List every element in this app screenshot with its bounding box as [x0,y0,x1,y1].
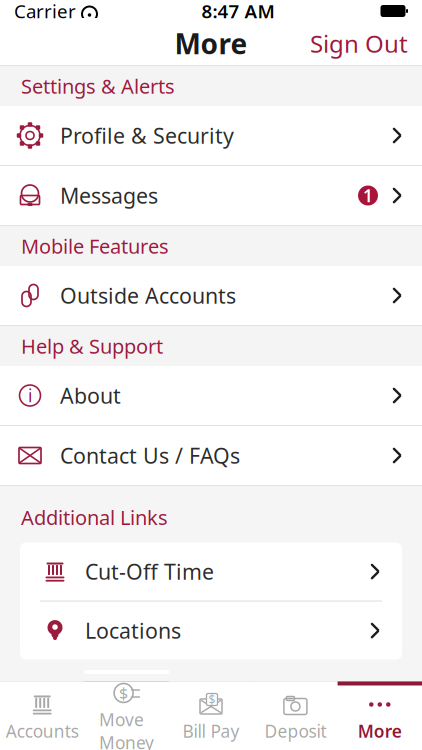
staticText: $ [208,691,215,707]
staticText: Cut-Off Time [85,557,214,586]
button[interactable]: Deposit [253,682,338,750]
button[interactable]: Cut-Off Time [20,543,402,601]
staticText: Move Money [99,708,154,750]
staticText: Contact Us / FAQs [60,441,240,470]
staticText: Locations [85,616,181,645]
button[interactable]: Profile & Security [0,106,422,166]
staticText: i [28,384,32,407]
staticText: Carrier [14,0,76,23]
staticText: More [358,719,402,742]
staticText: 1 [363,184,373,207]
button[interactable]: More [338,682,422,750]
staticText: Sign Out [310,28,408,59]
button[interactable]: Outside Accounts [0,266,422,326]
staticText: Profile & Security [60,121,234,150]
staticText: Accounts [6,719,79,742]
button[interactable]: Messages [0,166,422,226]
button[interactable]: Contact Us / FAQs [0,426,422,486]
staticText: $ [119,682,128,704]
staticText: About [60,381,121,410]
button[interactable]: i [0,366,422,426]
button[interactable]: Sign Out [296,20,422,67]
staticText: 8:47 AM [201,0,274,23]
button[interactable]: Locations [20,602,402,660]
button[interactable]: $ [84,682,169,750]
staticText: Help & Support [21,333,163,359]
staticText: Messages [60,181,158,210]
staticText: Bill Pay [182,719,239,742]
staticText: Additional Links [21,504,168,531]
staticText: Outside Accounts [60,281,236,310]
staticText: Deposit [264,719,326,742]
staticText: Mobile Features [21,233,169,259]
staticText: More [174,25,247,62]
button[interactable]: Accounts [0,682,84,750]
staticText: Settings & Alerts [21,73,175,99]
button[interactable]: $ [169,682,253,750]
